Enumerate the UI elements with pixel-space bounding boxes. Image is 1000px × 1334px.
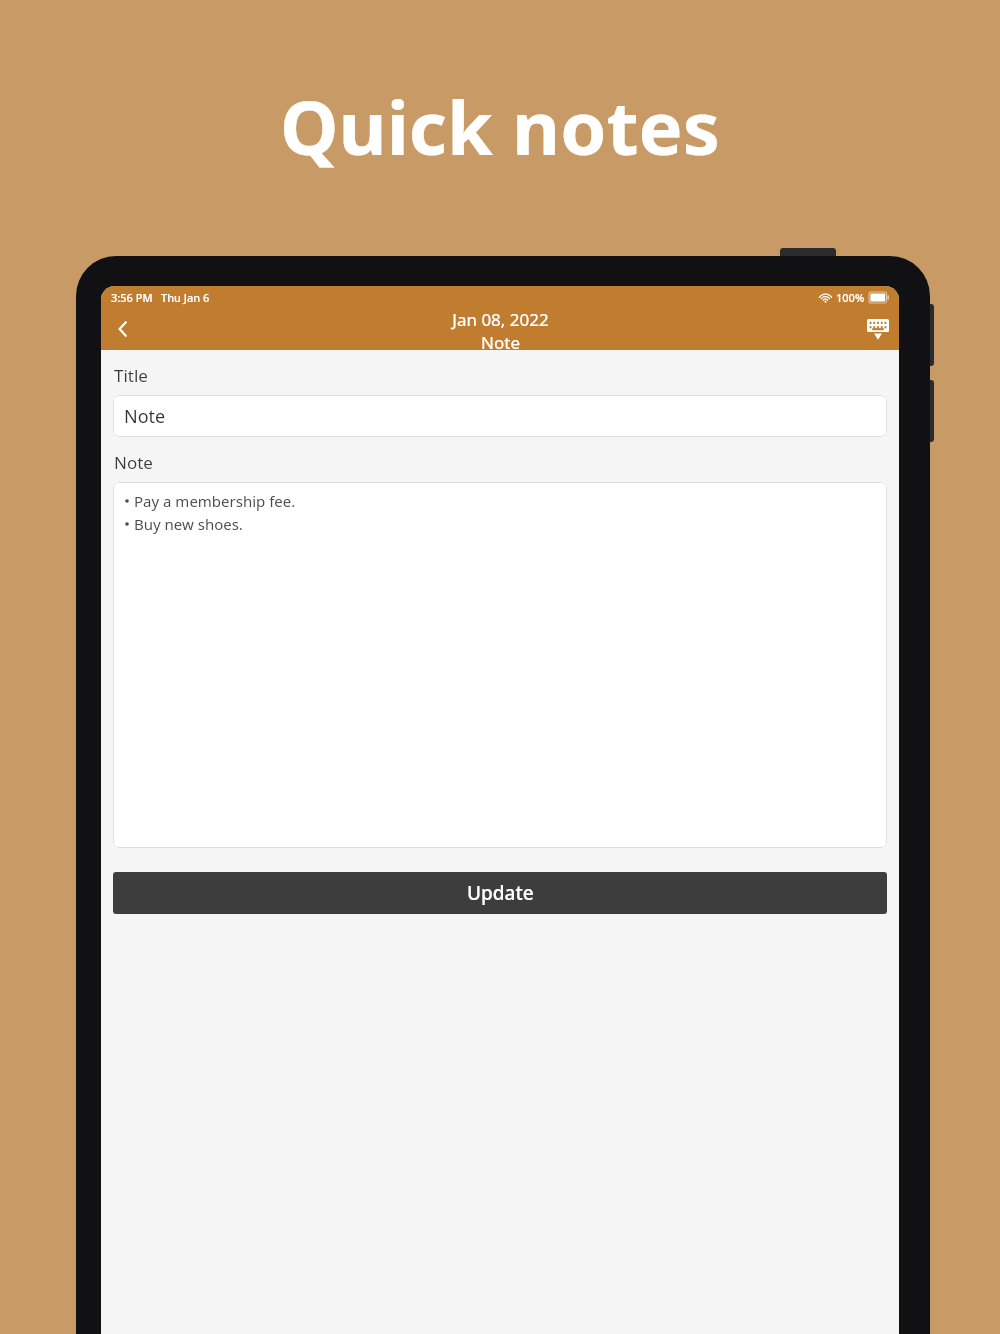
staticText: Title xyxy=(114,364,148,387)
button[interactable]: Pay a membership fee. xyxy=(113,482,887,848)
staticText: 100% xyxy=(836,290,865,305)
staticText: Note xyxy=(114,451,153,474)
button[interactable]: Hide keyboard xyxy=(857,308,899,350)
staticText: Quick notes xyxy=(280,76,720,177)
staticText: Update xyxy=(467,880,534,906)
staticText: 3:56 PM xyxy=(111,290,153,305)
staticText: Pay a membership fee. xyxy=(134,491,296,511)
button[interactable]: Back xyxy=(101,308,145,350)
staticText: Buy new shoes. xyxy=(134,514,243,534)
staticText: Note xyxy=(481,331,520,350)
button[interactable]: Update xyxy=(113,872,887,914)
staticText: Note xyxy=(124,404,166,429)
button[interactable]: Note xyxy=(113,395,887,437)
staticText: Thu Jan 6 xyxy=(161,290,210,305)
staticText: Jan 08, 2022 xyxy=(452,308,549,331)
